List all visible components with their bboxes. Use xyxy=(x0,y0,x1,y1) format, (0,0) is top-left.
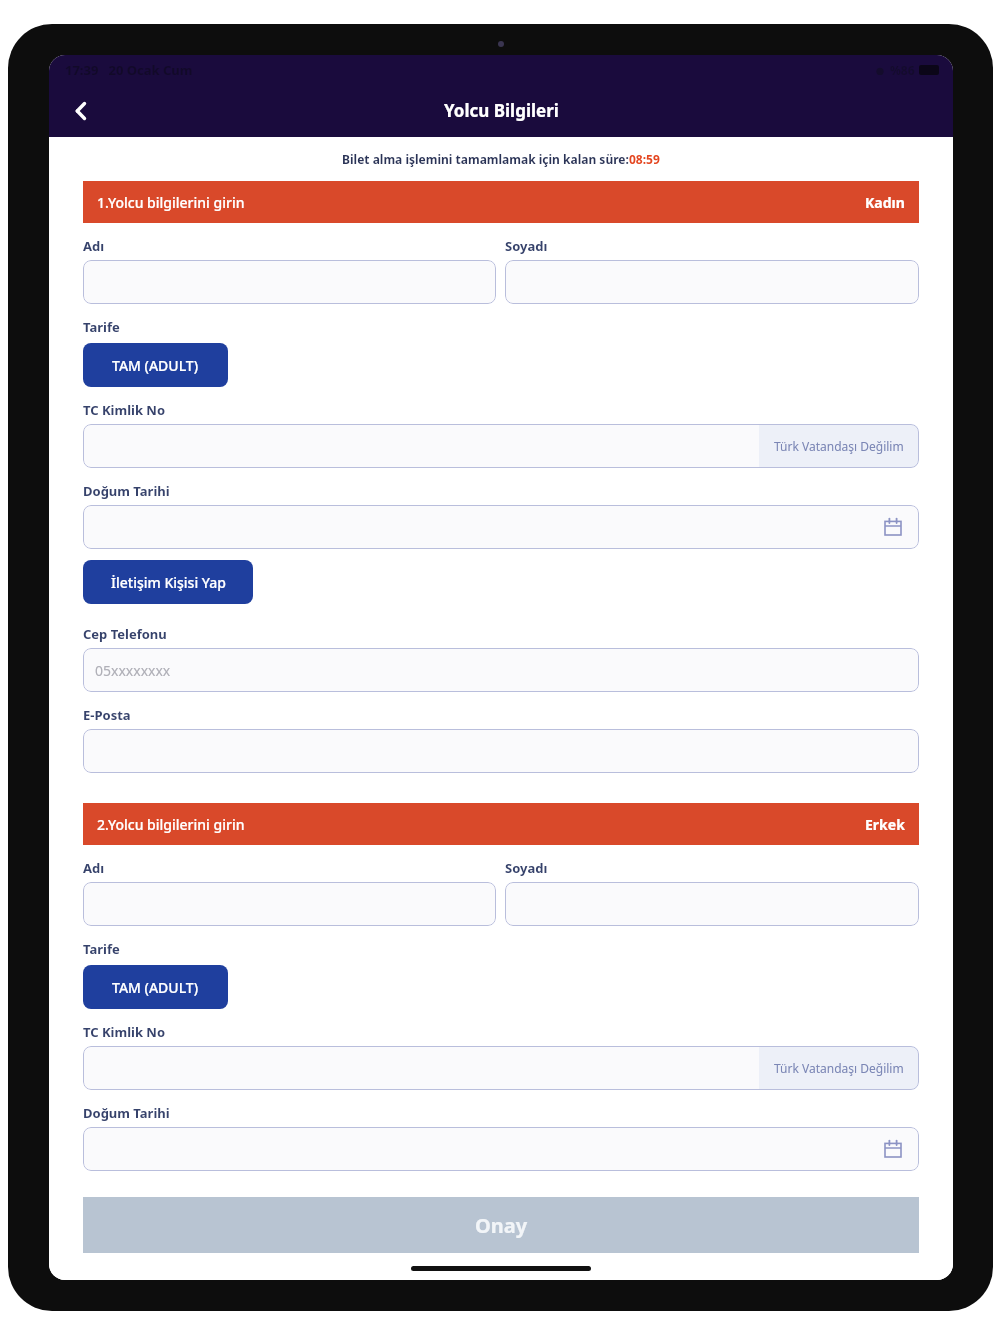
staticText: Tarife xyxy=(83,318,120,336)
staticText: 2.Yolcu bilgilerini girin xyxy=(97,815,245,834)
button[interactable]: Tarih seç xyxy=(883,1139,903,1159)
button[interactable]: 05xxxxxxxx xyxy=(83,648,919,692)
staticText: TAM (ADULT) xyxy=(112,978,199,997)
staticText: Doğum Tarihi xyxy=(83,1104,170,1122)
button[interactable] xyxy=(83,260,496,304)
button[interactable]: TAM (ADULT) xyxy=(83,965,228,1009)
staticText: 05xxxxxxxx xyxy=(95,661,171,680)
staticText: TAM (ADULT) xyxy=(112,356,199,375)
staticText: Tarife xyxy=(83,940,120,958)
staticText: Kadın xyxy=(865,193,905,212)
button[interactable]: Türk Vatandaşı Değilim xyxy=(83,1046,919,1090)
staticText: 08:59 xyxy=(629,151,660,167)
staticText: Onay xyxy=(475,1212,528,1239)
staticText: Doğum Tarihi xyxy=(83,482,170,500)
button[interactable]: Tarih seç xyxy=(83,505,919,549)
staticText: TC Kimlik No xyxy=(83,1023,166,1041)
staticText: 1.Yolcu bilgilerini girin xyxy=(97,193,245,212)
staticText: Türk Vatandaşı Değilim xyxy=(774,438,904,454)
button[interactable]: Türk Vatandaşı Değilim xyxy=(83,424,919,468)
button[interactable]: TAM (ADULT) xyxy=(83,343,228,387)
button[interactable] xyxy=(505,882,919,926)
staticText: Türk Vatandaşı Değilim xyxy=(774,1060,904,1076)
button[interactable] xyxy=(83,882,496,926)
button[interactable] xyxy=(505,260,919,304)
staticText: Erkek xyxy=(865,815,905,834)
staticText: Yolcu Bilgileri xyxy=(444,99,559,122)
staticText: E-Posta xyxy=(83,706,131,724)
button[interactable]: Türk Vatandaşı Değilim xyxy=(759,424,919,468)
staticText: Soyadı xyxy=(505,859,548,877)
button[interactable] xyxy=(83,729,919,773)
button[interactable]: 2.Yolcu bilgilerini girin xyxy=(83,803,919,845)
staticText: İletişim Kişisi Yap xyxy=(111,573,226,592)
button[interactable]: Türk Vatandaşı Değilim xyxy=(759,1046,919,1090)
staticText: TC Kimlik No xyxy=(83,401,166,419)
button[interactable]: Tarih seç xyxy=(83,1127,919,1171)
staticText: Bilet alma işlemini tamamlamak için kala… xyxy=(342,151,629,167)
button[interactable]: Onay xyxy=(83,1197,919,1253)
button[interactable]: İletişim Kişisi Yap xyxy=(83,560,253,604)
button[interactable]: Tarih seç xyxy=(883,517,903,537)
staticText: Soyadı xyxy=(505,237,548,255)
staticText: Cep Telefonu xyxy=(83,625,167,643)
staticText: Adı xyxy=(83,859,105,877)
button[interactable]: Geri xyxy=(57,87,105,135)
button[interactable]: 1.Yolcu bilgilerini girin xyxy=(83,181,919,223)
staticText: Adı xyxy=(83,237,105,255)
staticText: %86 xyxy=(890,62,915,78)
staticText: 17:39 20 Ocak Cum xyxy=(65,61,193,79)
